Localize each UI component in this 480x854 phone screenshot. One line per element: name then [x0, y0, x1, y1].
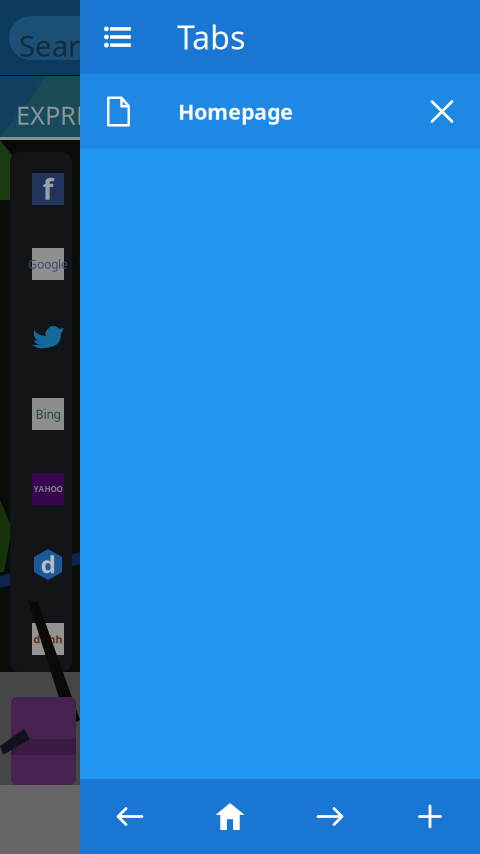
button[interactable]: New tab	[380, 779, 480, 854]
button[interactable]: Homepage	[80, 74, 480, 149]
staticText: dishh	[33, 632, 62, 646]
staticText: Search	[19, 26, 112, 65]
staticText: Tabs	[177, 16, 245, 58]
button[interactable]: Home	[180, 779, 280, 854]
staticText: Bing	[35, 406, 60, 422]
staticText: YAHOO	[33, 484, 62, 494]
staticText: EXPRESS	[16, 98, 118, 132]
staticText: Google	[28, 256, 68, 272]
staticText: f	[42, 170, 53, 208]
button[interactable]: Tabs	[80, 0, 480, 74]
staticText: Homepage	[178, 97, 293, 126]
staticText: d	[40, 548, 55, 580]
button[interactable]: Back	[80, 779, 180, 854]
button[interactable]: Forward	[280, 779, 380, 854]
